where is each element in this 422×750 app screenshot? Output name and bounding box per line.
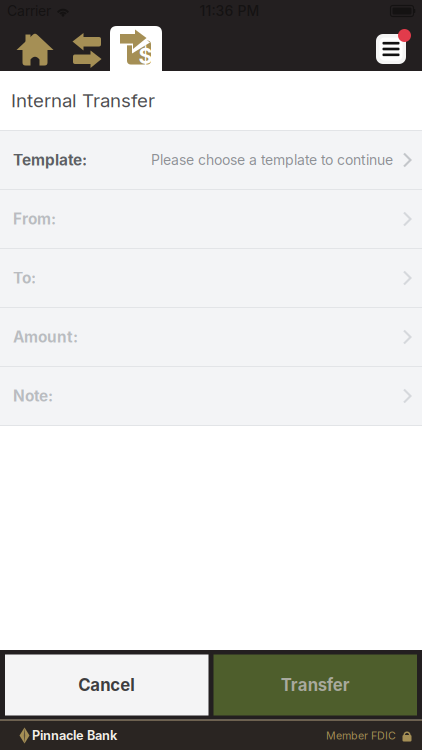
button[interactable]: Transfer (213, 654, 417, 715)
staticText: Pinnacle Bank (32, 728, 117, 743)
button[interactable]: Menu (376, 22, 422, 71)
staticText: To: (13, 269, 36, 287)
staticText: 11:36 PM (199, 2, 259, 19)
staticText: Amount: (13, 328, 78, 346)
button[interactable]: Note: (0, 367, 422, 426)
staticText: From: (13, 210, 56, 228)
button[interactable]: Home (2, 22, 58, 71)
staticText: Internal Transfer (11, 89, 155, 112)
button[interactable]: Template: (0, 131, 422, 190)
staticText: $ (138, 43, 152, 69)
staticText: Carrier (7, 2, 51, 19)
button[interactable]: To: (0, 249, 422, 308)
button[interactable]: Amount: (0, 308, 422, 367)
staticText: Please choose a template to continue (151, 151, 393, 168)
staticText: Cancel (78, 675, 135, 695)
staticText: Transfer (281, 675, 350, 695)
button[interactable]: Transfers (58, 22, 110, 71)
staticText: Member FDIC (326, 729, 396, 742)
staticText: Note: (13, 387, 53, 405)
staticText: Template: (13, 151, 87, 169)
button[interactable]: Internal Transfer (110, 22, 162, 71)
button[interactable]: Cancel (5, 654, 208, 715)
button[interactable]: From: (0, 190, 422, 249)
